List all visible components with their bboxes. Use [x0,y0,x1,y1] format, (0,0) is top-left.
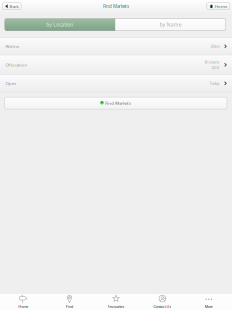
button[interactable]: by Location [5,18,115,31]
staticText: More [205,304,213,309]
staticText: Today [209,81,219,86]
staticText: Find [66,304,73,309]
staticText: Back [9,3,18,9]
button[interactable]: Home [0,294,46,310]
staticText: by Name [160,21,182,28]
button[interactable]: Within [0,38,232,55]
staticText: 25km [210,44,219,49]
button[interactable]: by Name [115,18,226,31]
button[interactable]: Open [0,75,232,92]
staticText: Find Markets [105,100,131,106]
button[interactable]: More [186,294,232,310]
staticText: Of location [5,62,27,68]
staticText: Within [5,43,19,49]
button[interactable]: Of location [0,55,232,74]
staticText: Home [18,304,28,309]
button[interactable]: Favourites [93,294,139,310]
button[interactable]: Find Markets [4,97,227,109]
staticText: Contact Us [153,304,171,309]
button[interactable]: Back [2,3,21,10]
staticText: QLD [211,65,219,70]
button[interactable]: Contact Us [139,294,186,310]
button[interactable]: Home [207,3,230,10]
button[interactable]: Find [46,294,93,310]
staticText: Brisbane [204,60,219,65]
staticText: by Location [46,21,73,28]
staticText: Open [5,80,16,86]
staticText: Favourites [107,304,124,309]
staticText: Home [215,3,227,9]
staticText: Find Markets [103,3,129,9]
